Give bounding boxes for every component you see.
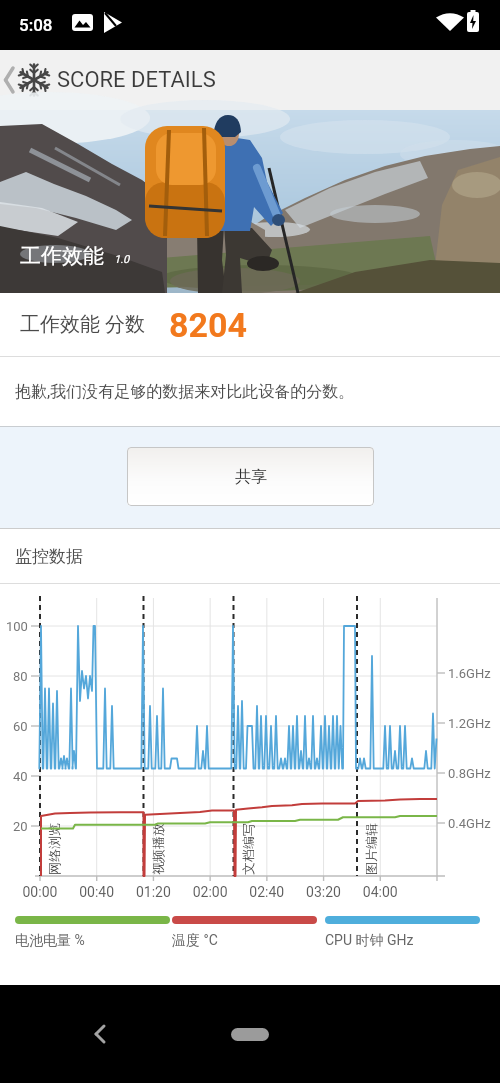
staticText: 1.0 — [114, 253, 130, 266]
staticText: 监控数据 — [15, 546, 83, 567]
staticText: 工作效能 分数 — [20, 312, 145, 337]
staticText: CPU 时钟 GHz — [325, 932, 414, 950]
staticText: 5:08 — [19, 15, 53, 35]
staticText: SCORE DETAILS — [57, 67, 216, 93]
staticText: 温度 °C — [172, 932, 218, 950]
staticText: 抱歉,我们没有足够的数据来对比此设备的分数。 — [15, 382, 355, 402]
staticText: 工作效能 — [20, 243, 104, 269]
staticText: 共享 — [235, 467, 267, 487]
staticText: 电池电量 % — [15, 932, 85, 950]
button[interactable] — [231, 1028, 269, 1041]
button[interactable]: 共享 — [127, 447, 374, 506]
button[interactable] — [80, 1017, 114, 1051]
staticText: 8204 — [169, 305, 248, 345]
button[interactable] — [0, 50, 20, 110]
